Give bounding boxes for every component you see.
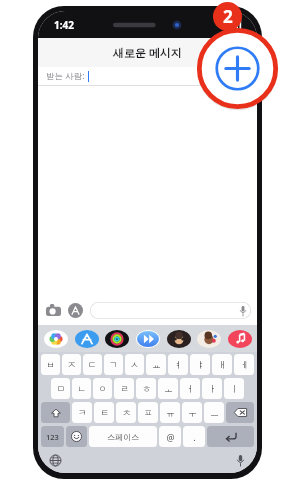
staticText: ㅁ <box>56 383 65 394</box>
staticText: ㅣ <box>230 383 239 394</box>
button[interactable]: ㅡ <box>204 402 224 423</box>
button[interactable]: Backspace <box>226 402 254 423</box>
staticText: . <box>193 431 196 443</box>
staticText: ㅓ <box>186 383 195 394</box>
staticText: 스페이스 <box>107 432 139 442</box>
staticText: ㅋ <box>78 407 87 418</box>
staticText: ㅇ <box>98 383 107 394</box>
button[interactable]: . <box>183 426 205 447</box>
staticText: ㅡ <box>210 407 219 418</box>
button[interactable]: ㅁ <box>51 378 70 399</box>
staticText: ㅕ <box>174 359 183 370</box>
button[interactable]: ㄱ <box>104 354 123 375</box>
button[interactable]: ㅋ <box>72 402 92 423</box>
button[interactable]: ㅊ <box>116 402 136 423</box>
button[interactable] <box>90 302 251 319</box>
staticText: ㅎ <box>142 383 151 394</box>
button[interactable]: Return <box>207 426 254 447</box>
button[interactable]: ㅔ <box>234 354 254 375</box>
button[interactable]: ㅑ <box>190 354 210 375</box>
button[interactable]: Dictation <box>232 452 248 468</box>
button[interactable]: App 5 <box>196 329 221 348</box>
staticText: ㅔ <box>240 359 249 370</box>
staticText: ㅐ <box>218 359 227 370</box>
staticText: 받는 사람: <box>46 70 85 82</box>
staticText: 2 <box>223 5 233 28</box>
button[interactable]: App 3 <box>135 329 160 348</box>
button[interactable]: ㅇ <box>93 378 112 399</box>
button[interactable]: ㄷ <box>83 354 102 375</box>
staticText: ㅜ <box>188 407 197 418</box>
button[interactable]: 123 <box>41 426 64 447</box>
staticText: ㄹ <box>120 383 129 394</box>
staticText: ㅈ <box>67 359 76 370</box>
staticText: ㅛ <box>152 359 161 370</box>
button[interactable]: Emoji <box>66 426 87 447</box>
button[interactable]: Apps <box>68 303 83 318</box>
button[interactable]: ㄹ <box>114 378 134 399</box>
staticText: 123 <box>46 432 59 442</box>
button[interactable]: ㅐ <box>212 354 232 375</box>
button[interactable]: ㅣ <box>224 378 244 399</box>
staticText: 새로운 메시지 <box>113 45 182 60</box>
button[interactable]: Camera <box>44 301 62 319</box>
button[interactable]: ㅍ <box>138 402 158 423</box>
button[interactable]: ㅌ <box>94 402 114 423</box>
button[interactable]: App 0 <box>43 329 68 348</box>
button[interactable]: Shift <box>41 402 70 423</box>
button[interactable]: App 4 <box>166 329 191 348</box>
button[interactable]: App 1 <box>74 329 99 348</box>
staticText: ㅑ <box>196 359 205 370</box>
button[interactable]: ㅏ <box>202 378 222 399</box>
button[interactable]: ㅛ <box>146 354 166 375</box>
button[interactable]: ㄴ <box>72 378 91 399</box>
button[interactable]: ㅠ <box>160 402 180 423</box>
button[interactable]: @ <box>159 426 181 447</box>
button[interactable]: Switch keyboard <box>47 452 63 468</box>
staticText: ㄴ <box>77 383 86 394</box>
staticText: ㅍ <box>144 407 153 418</box>
staticText: 1:42 <box>54 18 74 32</box>
button[interactable]: ㅕ <box>168 354 188 375</box>
button[interactable]: ㅅ <box>125 354 144 375</box>
staticText: ㄱ <box>109 359 118 370</box>
staticText: ㅂ <box>46 359 55 370</box>
button[interactable]: ㅓ <box>180 378 200 399</box>
button[interactable]: ㅜ <box>182 402 202 423</box>
button[interactable]: App 6 <box>227 329 252 348</box>
staticText: ㅅ <box>130 359 139 370</box>
button[interactable]: ㅂ <box>41 354 60 375</box>
button[interactable]: App 2 <box>104 329 129 348</box>
staticText: ㄷ <box>88 359 97 370</box>
staticText: ㅌ <box>100 407 109 418</box>
button[interactable]: ㅈ <box>62 354 81 375</box>
button[interactable]: 스페이스 <box>89 426 157 447</box>
staticText: ㅏ <box>208 383 217 394</box>
button[interactable]: ㅎ <box>136 378 156 399</box>
staticText: @ <box>166 431 175 443</box>
button[interactable]: ㅗ <box>158 378 178 399</box>
staticText: ㅠ <box>166 407 175 418</box>
staticText: ㅗ <box>164 383 173 394</box>
staticText: ㅊ <box>122 407 131 418</box>
